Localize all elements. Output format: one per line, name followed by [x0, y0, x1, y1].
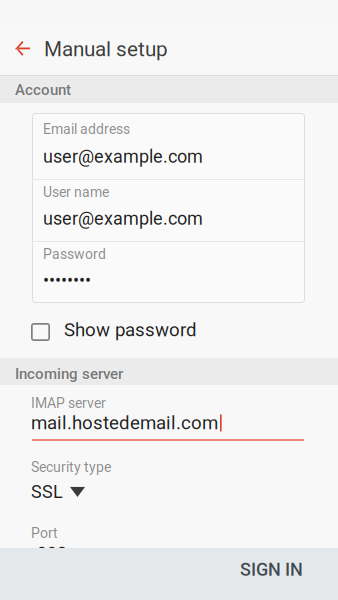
staticText: mail.hostedemail.com: [31, 412, 218, 434]
staticText: Password: [43, 246, 106, 262]
staticText: user@example.com: [43, 146, 203, 167]
staticText: user@example.com: [43, 208, 203, 229]
staticText: Port: [31, 525, 58, 541]
staticText: Account: [15, 81, 71, 99]
button[interactable]: Back: [0, 22, 44, 75]
staticText: User name: [43, 184, 109, 200]
staticText: SIGN IN: [240, 559, 303, 580]
staticText: Email address: [43, 121, 130, 137]
button[interactable]: Security type: [31, 459, 303, 503]
staticText: Manual setup: [44, 37, 168, 61]
staticText: IMAP server: [31, 395, 106, 411]
staticText: ••••••••: [43, 270, 91, 291]
staticText: SSL: [31, 481, 63, 502]
button[interactable]: Show password: [0, 308, 338, 352]
staticText: Security type: [31, 459, 111, 475]
staticText: Incoming server: [15, 365, 123, 383]
staticText: 993: [37, 543, 67, 564]
staticText: Show password: [64, 319, 197, 341]
button[interactable]: SIGN IN: [0, 548, 338, 600]
